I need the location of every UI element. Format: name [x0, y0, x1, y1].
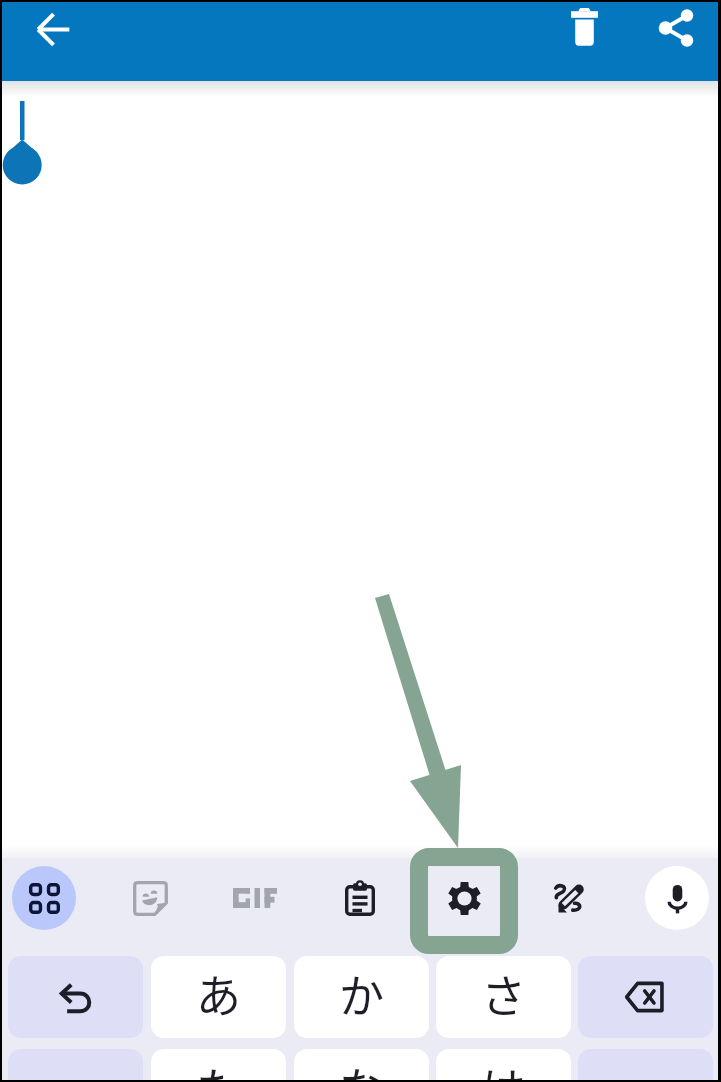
button[interactable]: Handwriting — [537, 866, 601, 930]
button[interactable]: Share — [644, 0, 708, 60]
button[interactable]: か — [294, 956, 429, 1038]
staticText: か — [339, 961, 385, 1026]
staticText: あ — [196, 961, 242, 1026]
staticText: さ — [481, 961, 527, 1026]
button[interactable]: Clipboard — [328, 866, 392, 930]
button[interactable]: は — [436, 1049, 571, 1082]
button[interactable] — [578, 956, 713, 1038]
button[interactable]: Delete — [552, 0, 616, 59]
button[interactable]: GIF — [223, 866, 287, 930]
staticText: た — [196, 1054, 242, 1082]
button[interactable]: な — [294, 1049, 429, 1082]
staticText: な — [339, 1054, 385, 1082]
button[interactable] — [8, 1049, 143, 1082]
button[interactable]: さ — [436, 956, 571, 1038]
button[interactable]: Voice input — [645, 866, 709, 930]
button[interactable]: Stickers — [118, 866, 182, 930]
staticText: は — [481, 1054, 527, 1082]
button[interactable]: Toolbar apps — [12, 866, 76, 930]
button[interactable]: あ — [151, 956, 286, 1038]
button[interactable] — [578, 1049, 713, 1082]
button[interactable]: た — [151, 1049, 286, 1082]
button[interactable] — [8, 956, 143, 1038]
button[interactable]: Back — [21, 0, 85, 61]
button[interactable]: Settings — [432, 866, 496, 930]
